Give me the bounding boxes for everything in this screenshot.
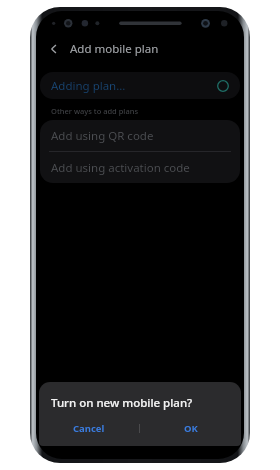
button[interactable]: Back	[42, 37, 66, 61]
staticText: Other ways to add plans	[51, 106, 139, 116]
staticText: Add using QR code	[51, 128, 154, 144]
button[interactable]: Cancel	[39, 414, 139, 442]
staticText: OK	[184, 422, 198, 435]
staticText: Add using activation code	[51, 160, 190, 176]
button[interactable]: OK	[140, 414, 241, 442]
staticText: Turn on new mobile plan?	[51, 395, 193, 411]
button[interactable]: Adding plan…	[40, 72, 240, 99]
staticText: Add mobile plan	[70, 41, 159, 57]
button[interactable]: Add using activation code	[40, 152, 240, 183]
staticText: Adding plan…	[51, 78, 126, 94]
staticText: Cancel	[73, 422, 105, 435]
button[interactable]: Add using QR code	[40, 120, 240, 151]
